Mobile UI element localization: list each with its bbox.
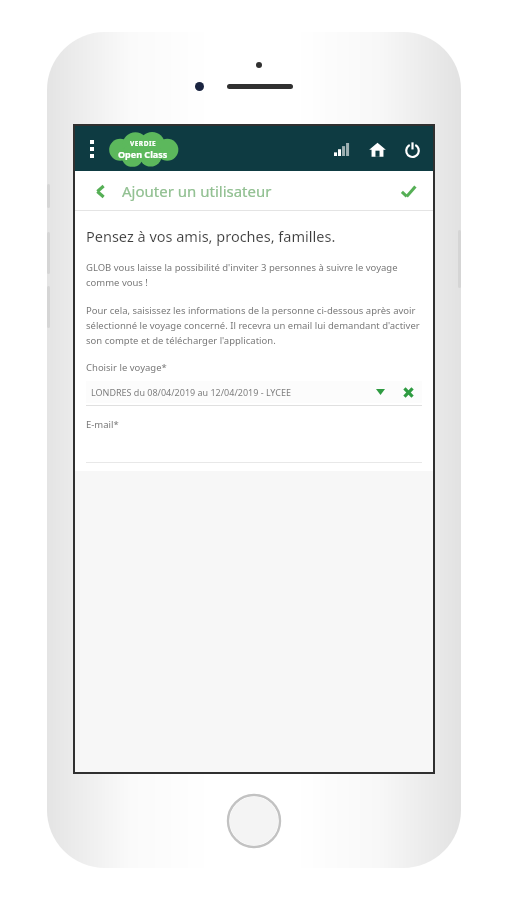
staticText: Pensez à vos amis, proches, familles. [86, 226, 336, 246]
button[interactable]: Ouvrir la liste [370, 382, 390, 402]
button[interactable]: Power [401, 138, 423, 160]
staticText: Open Class [118, 148, 168, 160]
staticText: Choisir le voyage* [86, 361, 167, 374]
staticText: Pour cela, saisissez les informations de… [86, 304, 422, 347]
button[interactable]: VERDIE [105, 130, 181, 168]
staticText: Ajouter un utilisateur [122, 181, 272, 201]
button[interactable]: Signal [331, 138, 353, 160]
button[interactable]: Back [87, 178, 113, 204]
button[interactable]: LONDRES du 08/04/2019 au 12/04/2019 - LY… [86, 381, 422, 403]
staticText: E-mail* [86, 418, 119, 431]
staticText: GLOB vous laisse la possibilité d'invite… [86, 261, 422, 289]
button[interactable]: Menu [79, 136, 105, 162]
button[interactable]: Effacer [398, 382, 418, 402]
staticText: LONDRES du 08/04/2019 au 12/04/2019 - LY… [91, 386, 291, 398]
button[interactable]: Home [366, 138, 388, 160]
button[interactable]: Valider [395, 178, 421, 204]
staticText: VERDIE [130, 139, 157, 148]
